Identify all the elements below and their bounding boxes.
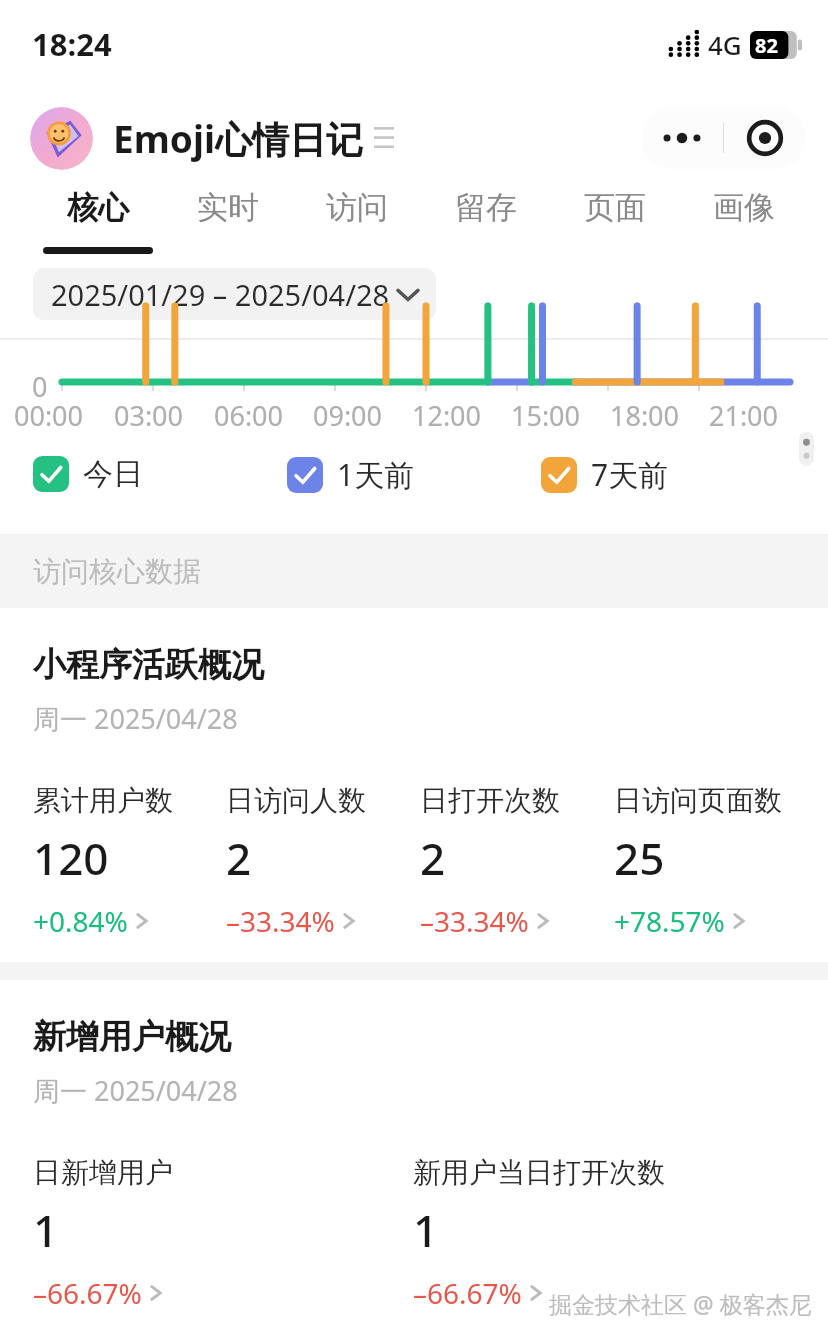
staticText: +78.57% [614, 902, 725, 940]
button[interactable]: 1天前 [287, 454, 541, 495]
staticText: 周一 2025/04/28 [33, 700, 238, 737]
button[interactable]: 2025/01/29 – 2025/04/28 [33, 268, 436, 320]
staticText: –33.34% [226, 902, 335, 940]
staticText: 周一 2025/04/28 [33, 1072, 238, 1109]
staticText: 1天前 [337, 454, 415, 495]
staticText: 留存 [455, 188, 517, 227]
staticText: 实时 [197, 188, 259, 227]
button[interactable]: 7天前 [541, 454, 795, 495]
staticText: 访问核心数据 [33, 554, 201, 589]
staticText: 掘金技术社区 @ 极客杰尼 [549, 1288, 812, 1319]
button[interactable]: 页面 [550, 188, 679, 227]
staticText: 2025/01/29 – 2025/04/28 [51, 275, 390, 314]
button[interactable]: 日访问页面数 [614, 783, 808, 940]
staticText: 2 [420, 828, 446, 888]
staticText: 新用户当日打开次数 [413, 1155, 665, 1190]
staticText: 7天前 [591, 454, 669, 495]
staticText: 12:00 [412, 397, 482, 434]
staticText: –66.67% [413, 1274, 522, 1312]
staticText: 00:00 [14, 397, 84, 434]
staticText: 21:00 [709, 397, 779, 434]
staticText: 日新增用户 [33, 1155, 173, 1190]
staticText: 页面 [584, 188, 646, 227]
staticText: 核心 [67, 188, 129, 227]
staticText: 06:00 [214, 397, 284, 434]
button[interactable]: 日访问人数 [226, 783, 420, 940]
staticText: Emoji心情日记 [113, 113, 364, 164]
button[interactable]: 今日 [33, 455, 287, 493]
staticText: 1 [413, 1200, 439, 1260]
button[interactable]: 画像 [679, 188, 808, 227]
staticText: 03:00 [114, 397, 184, 434]
button[interactable]: 实时 [163, 188, 292, 227]
button[interactable]: More [641, 130, 723, 146]
button[interactable]: 访问 [292, 188, 421, 227]
staticText: 82 [755, 32, 778, 59]
staticText: 0 [32, 368, 48, 405]
button[interactable]: 累计用户数 [33, 783, 226, 940]
staticText: 新增用户概况 [33, 1016, 231, 1058]
staticText: 1 [33, 1200, 59, 1260]
staticText: 2 [226, 828, 252, 888]
staticText: 18:00 [610, 397, 680, 434]
staticText: 18:24 [32, 23, 112, 65]
staticText: 访问 [326, 188, 388, 227]
staticText: –66.67% [33, 1274, 142, 1312]
staticText: 09:00 [313, 397, 383, 434]
staticText: 25 [614, 828, 665, 888]
button[interactable]: 留存 [421, 188, 550, 227]
staticText: 累计用户数 [33, 783, 173, 818]
staticText: 小程序活跃概况 [33, 644, 264, 686]
staticText: 画像 [713, 188, 775, 227]
staticText: 日访问页面数 [614, 783, 782, 818]
staticText: 4G [708, 27, 742, 62]
button[interactable]: 日新增用户 [33, 1155, 413, 1312]
button[interactable]: 核心 [33, 188, 163, 254]
staticText: –33.34% [420, 902, 529, 940]
button[interactable]: 日打开次数 [420, 783, 614, 940]
button[interactable]: 新用户当日打开次数 [413, 1155, 793, 1312]
staticText: 今日 [83, 455, 143, 493]
staticText: 日访问人数 [226, 783, 366, 818]
staticText: +0.84% [33, 902, 128, 940]
button[interactable]: Close [724, 120, 806, 156]
staticText: 日打开次数 [420, 783, 560, 818]
staticText: 15:00 [511, 397, 581, 434]
staticText: 120 [33, 828, 109, 888]
